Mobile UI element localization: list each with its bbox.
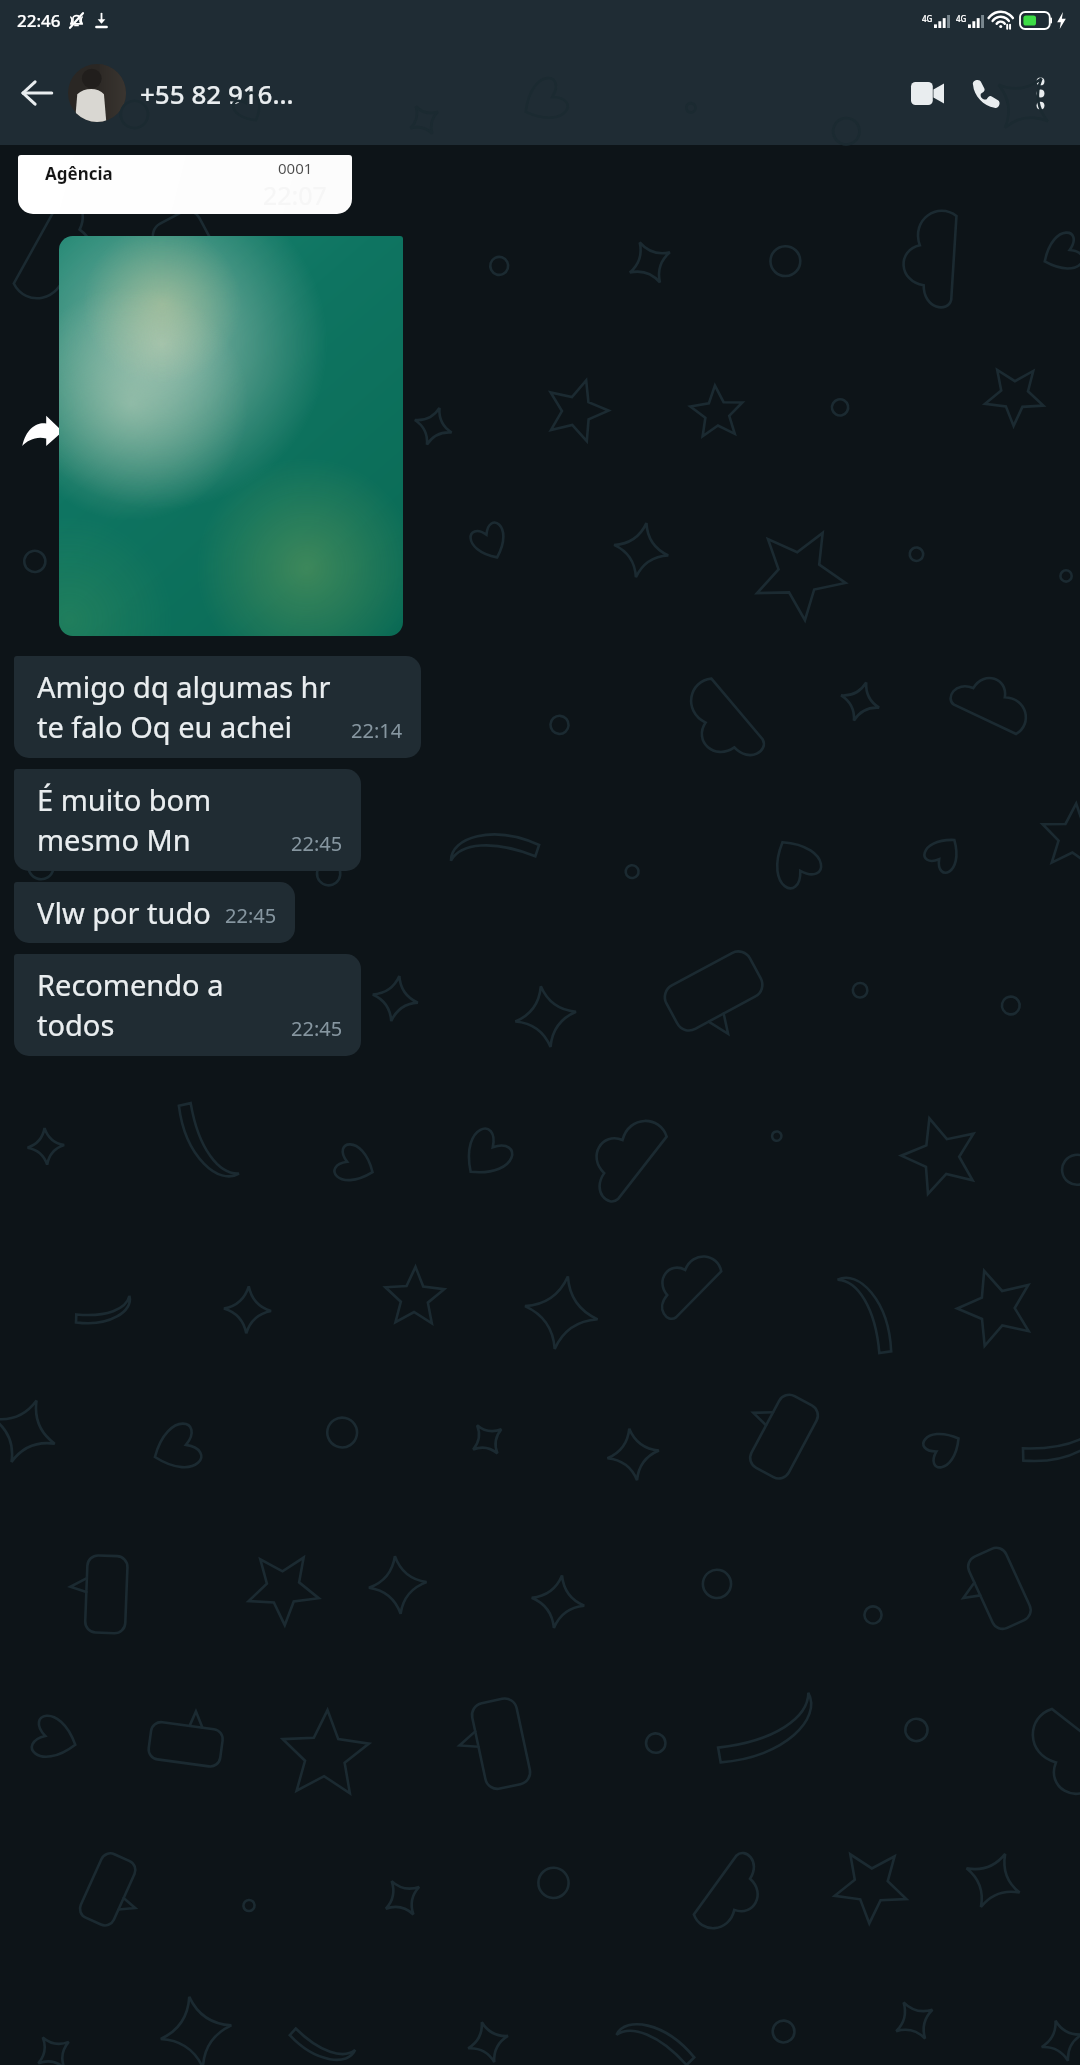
staticText: 4G (956, 13, 967, 24)
staticText: Recomendo a todos (37, 965, 277, 1045)
button[interactable]: Amigo dq algumas hr te falo Oq eu achei (14, 656, 421, 758)
button[interactable]: É muito bom mesmo Mn (14, 769, 361, 871)
button[interactable]: Vlw por tudo (14, 882, 295, 943)
staticText: 22:46 (17, 9, 61, 32)
button[interactable]: Recomendo a todos (14, 954, 361, 1056)
button[interactable]: Agência (18, 155, 352, 214)
button[interactable]: Back (10, 66, 64, 120)
staticText: Amigo dq algumas hr te falo Oq eu achei (37, 667, 337, 747)
staticText: 4G (922, 13, 933, 24)
staticText: 22:14 (351, 717, 403, 744)
staticText: Agência (45, 162, 113, 185)
button[interactable]: Video call (898, 64, 956, 122)
button[interactable]: More options (1014, 67, 1066, 119)
staticText: Vlw por tudo (37, 893, 211, 932)
button[interactable]: Voice call (956, 64, 1014, 122)
staticText: É muito bom mesmo Mn (37, 780, 277, 860)
button[interactable] (59, 236, 403, 636)
staticText: 22:45 (225, 902, 277, 929)
staticText: 0001 (278, 158, 313, 178)
staticText: 22:45 (291, 1015, 343, 1042)
button[interactable]: Forward (14, 408, 70, 464)
staticText: 22:45 (291, 830, 343, 857)
staticText: +55 82 916… (140, 76, 294, 111)
button[interactable]: +55 82 916… (68, 64, 898, 122)
